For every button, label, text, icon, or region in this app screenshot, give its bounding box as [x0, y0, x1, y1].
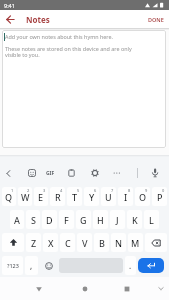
staticText: 3: [43, 188, 46, 193]
staticText: T: [72, 191, 78, 203]
staticText: S: [31, 214, 36, 226]
button[interactable]: L: [144, 210, 159, 229]
staticText: 1: [11, 188, 14, 193]
staticText: B: [99, 237, 105, 249]
button[interactable]: E: [34, 187, 48, 206]
staticText: Y: [89, 191, 95, 203]
staticText: N: [115, 237, 122, 249]
staticText: 5: [77, 188, 80, 193]
staticText: L: [149, 214, 154, 226]
staticText: R: [55, 191, 61, 203]
button[interactable]: O: [135, 187, 150, 206]
button[interactable]: R: [50, 187, 65, 206]
staticText: Add your own notes about this hymn here.: [5, 33, 113, 40]
staticText: F: [64, 214, 69, 226]
staticText: D: [46, 214, 53, 226]
button[interactable]: M: [128, 233, 143, 252]
button[interactable]: DONE: [148, 16, 164, 23]
staticText: E: [38, 191, 44, 203]
staticText: ,: [30, 260, 33, 271]
button[interactable]: [40, 256, 57, 275]
button[interactable]: J: [110, 210, 125, 229]
button[interactable]: H: [93, 210, 108, 229]
button[interactable]: [145, 233, 167, 252]
staticText: GIF: [46, 170, 55, 177]
staticText: Z: [31, 237, 37, 249]
staticText: K: [132, 214, 138, 226]
button[interactable]: G: [76, 210, 91, 229]
button[interactable]: P: [152, 187, 167, 206]
staticText: 7: [111, 188, 114, 193]
button[interactable]: [138, 258, 164, 273]
staticText: A: [14, 214, 20, 226]
staticText: U: [105, 191, 112, 203]
button[interactable]: B: [94, 233, 109, 252]
staticText: 9:41: [4, 2, 15, 9]
button[interactable]: Y: [84, 187, 99, 206]
button[interactable]: Q: [2, 187, 16, 206]
staticText: 9: [145, 188, 148, 193]
staticText: 8: [128, 188, 131, 193]
staticText: Q: [5, 191, 13, 203]
staticText: These notes are stored on this device an…: [5, 45, 132, 59]
staticText: I: [124, 191, 128, 203]
staticText: H: [97, 214, 104, 226]
button[interactable]: .: [125, 256, 136, 275]
button[interactable]: C: [60, 233, 75, 252]
button[interactable]: X: [43, 233, 58, 252]
staticText: V: [82, 237, 88, 249]
button[interactable]: W: [18, 187, 32, 206]
button[interactable]: S: [26, 210, 40, 229]
button[interactable]: GIF: [46, 170, 55, 177]
button[interactable]: ,: [25, 256, 38, 275]
button[interactable]: A: [10, 210, 24, 229]
button[interactable]: [2, 233, 24, 252]
button[interactable]: N: [111, 233, 126, 252]
staticText: 4: [60, 188, 63, 193]
staticText: M: [131, 237, 140, 249]
staticText: .: [129, 260, 132, 271]
button[interactable]: [80, 284, 90, 294]
staticText: DONE: [148, 16, 164, 23]
staticText: 2: [27, 188, 30, 193]
staticText: Notes: [26, 14, 50, 25]
staticText: C: [65, 237, 71, 249]
staticText: X: [48, 237, 54, 249]
staticText: 0: [162, 188, 165, 193]
staticText: 6: [94, 188, 97, 193]
staticText: P: [157, 191, 163, 203]
button[interactable]: Add your own notes about this hymn here.: [2, 30, 166, 148]
button[interactable]: V: [77, 233, 92, 252]
button[interactable]: D: [42, 210, 57, 229]
button[interactable]: I: [118, 187, 133, 206]
button[interactable]: [4, 13, 16, 25]
button[interactable]: [34, 284, 44, 294]
button[interactable]: ?123: [2, 256, 23, 275]
staticText: W: [21, 191, 30, 203]
button[interactable]: U: [101, 187, 116, 206]
button[interactable]: F: [59, 210, 74, 229]
staticText: O: [139, 191, 147, 203]
button[interactable]: K: [127, 210, 142, 229]
button[interactable]: Z: [26, 233, 41, 252]
staticText: ?123: [7, 262, 19, 269]
staticText: G: [80, 214, 87, 226]
button[interactable]: [122, 284, 132, 294]
staticText: J: [116, 214, 119, 226]
button[interactable]: T: [67, 187, 82, 206]
